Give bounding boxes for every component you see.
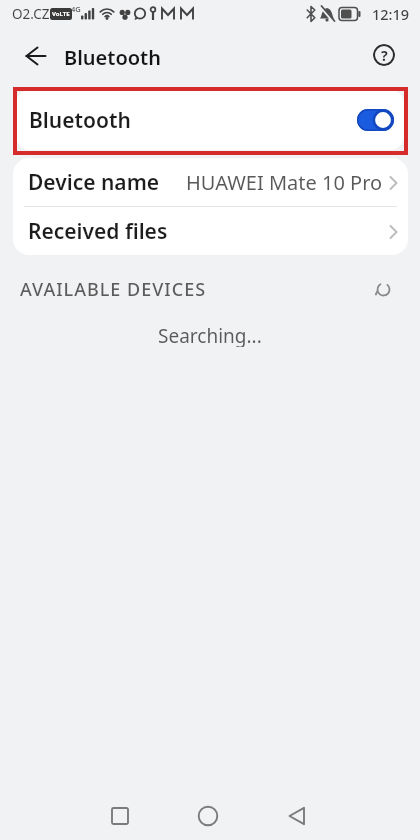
- staticText: O2.CZ: [12, 5, 50, 23]
- staticText: Bluetooth: [29, 106, 131, 135]
- button[interactable]: [198, 806, 218, 826]
- staticText: 12:19: [372, 4, 410, 24]
- staticText: AVAILABLE DEVICES: [20, 277, 207, 302]
- button[interactable]: [110, 806, 130, 826]
- button[interactable]: [20, 42, 50, 72]
- button[interactable]: ?: [373, 44, 395, 66]
- staticText: Device name: [28, 168, 160, 197]
- staticText: VoLTE: [52, 10, 70, 18]
- button[interactable]: [287, 806, 307, 826]
- button[interactable]: Bluetooth: [16, 90, 404, 150]
- staticText: Received files: [28, 217, 168, 246]
- button[interactable]: [357, 109, 394, 131]
- button[interactable]: Received files: [28, 207, 398, 255]
- staticText: 4G: [71, 4, 81, 14]
- staticText: ?: [381, 46, 388, 65]
- button[interactable]: Device name: [28, 158, 398, 207]
- staticText: HUAWEI Mate 10 Pro: [186, 169, 383, 196]
- staticText: Searching...: [158, 323, 262, 347]
- staticText: Bluetooth: [64, 44, 161, 71]
